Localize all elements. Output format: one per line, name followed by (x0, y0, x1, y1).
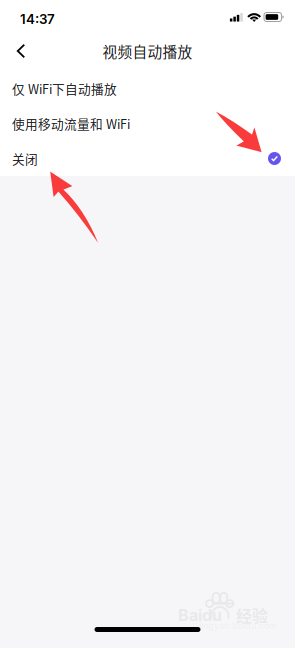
button[interactable]: 使用移动流量和 WiFi (0, 106, 295, 141)
staticText: 关闭 (12, 149, 38, 168)
button[interactable]: Back (3, 36, 39, 66)
button[interactable]: 仅 WiFi下自动播放 (0, 71, 295, 106)
staticText: Baidu (178, 605, 222, 625)
staticText: 经验 (236, 603, 268, 627)
staticText: jingyan.baidu.com (199, 620, 277, 631)
staticText: 视频自动播放 (102, 40, 192, 62)
staticText: 使用移动流量和 WiFi (12, 114, 130, 133)
staticText: 仅 WiFi下自动播放 (12, 79, 117, 98)
button[interactable]: 关闭 (0, 141, 295, 176)
staticText: 14:37 (20, 11, 55, 27)
